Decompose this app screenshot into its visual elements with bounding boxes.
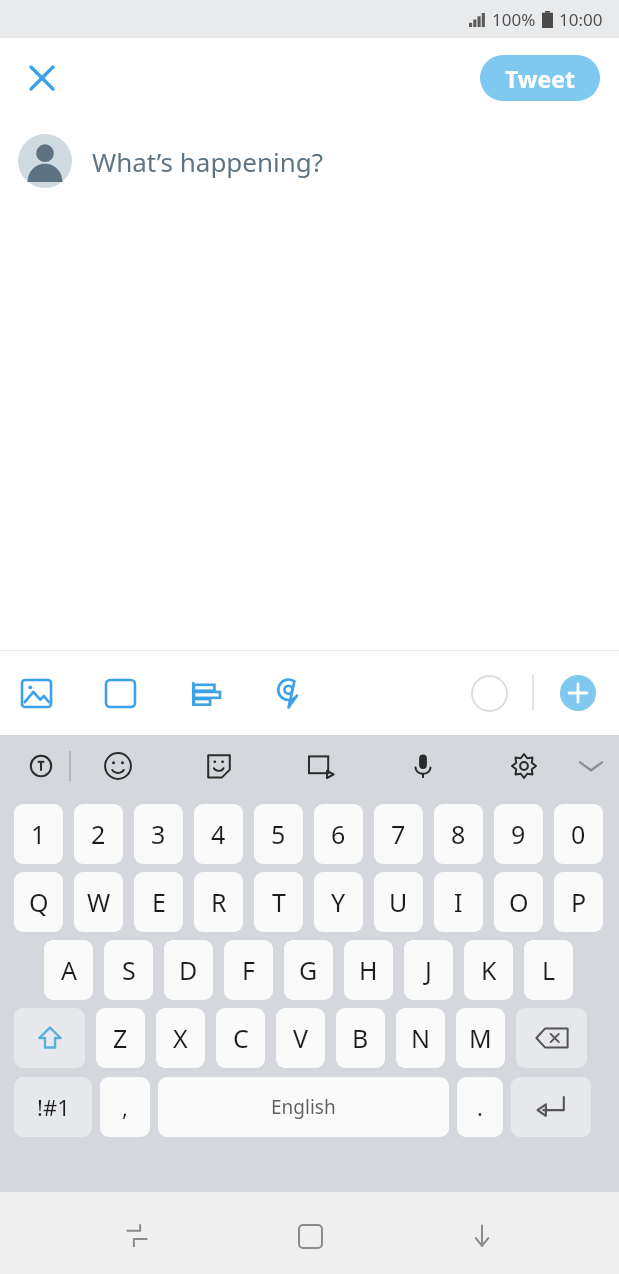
button[interactable]: M [456, 1008, 505, 1068]
staticText: U [389, 885, 408, 919]
button[interactable]: 2 [74, 804, 123, 864]
button[interactable]: Hide keyboard [447, 1201, 517, 1271]
button[interactable]: F [224, 940, 273, 1000]
staticText: 100% [492, 8, 536, 31]
staticText: N [411, 1021, 431, 1055]
button[interactable]: H [344, 940, 393, 1000]
staticText: G [299, 953, 318, 987]
staticText: D [179, 953, 198, 987]
button[interactable]: B [336, 1008, 385, 1068]
button[interactable]: Close [18, 54, 66, 102]
button[interactable]: K [464, 940, 513, 1000]
staticText: 8 [451, 817, 466, 851]
staticText: What’s happening? [92, 144, 324, 179]
button[interactable]: Q [14, 872, 63, 932]
button[interactable]: X [156, 1008, 205, 1068]
button[interactable]: 1 [14, 804, 63, 864]
button[interactable]: Keyboard settings [501, 743, 547, 789]
staticText: 7 [391, 817, 406, 851]
button[interactable]: Add location [264, 669, 312, 717]
staticText: V [293, 1021, 309, 1055]
button[interactable]: key [516, 1008, 587, 1068]
button[interactable]: Voice input [400, 743, 446, 789]
button[interactable]: 9 [494, 804, 543, 864]
staticText: 5 [271, 817, 286, 851]
button[interactable]: S [104, 940, 153, 1000]
button[interactable]: Z [96, 1008, 145, 1068]
button[interactable]: A [44, 940, 93, 1000]
staticText: , [122, 1092, 128, 1122]
staticText: A [61, 953, 77, 987]
button[interactable]: key [511, 1077, 591, 1137]
staticText: K [481, 953, 497, 987]
staticText: . [477, 1092, 483, 1122]
staticText: English [271, 1094, 336, 1120]
staticText: 0 [571, 817, 586, 851]
button[interactable]: T [254, 872, 303, 932]
button[interactable]: key [14, 1008, 85, 1068]
button[interactable]: Add photo [12, 669, 60, 717]
staticText: 2 [91, 817, 106, 851]
button[interactable]: GIF keyboard [298, 743, 344, 789]
staticText: C [233, 1021, 249, 1055]
button[interactable]: V [276, 1008, 325, 1068]
button[interactable]: Recents [102, 1201, 172, 1271]
staticText: S [122, 953, 136, 987]
staticText: 3 [151, 817, 166, 851]
button[interactable]: 8 [434, 804, 483, 864]
button[interactable]: 6 [314, 804, 363, 864]
staticText: P [571, 885, 587, 919]
button[interactable]: !#1 [14, 1077, 92, 1137]
button[interactable]: W [74, 872, 123, 932]
button[interactable]: 7 [374, 804, 423, 864]
staticText: 1 [31, 817, 46, 851]
staticText: O [509, 885, 529, 919]
staticText: T [272, 885, 286, 919]
staticText: L [542, 953, 556, 987]
button[interactable]: . [457, 1077, 503, 1137]
button[interactable]: Emoji [95, 743, 141, 789]
button[interactable]: C [216, 1008, 265, 1068]
button[interactable]: Add GIF [96, 669, 144, 717]
button[interactable]: English [158, 1077, 449, 1137]
staticText: R [211, 885, 227, 919]
staticText: J [425, 953, 432, 987]
staticText: 9 [511, 817, 526, 851]
button[interactable]: Add another tweet [556, 671, 600, 715]
button[interactable]: L [524, 940, 573, 1000]
button[interactable]: 0 [554, 804, 603, 864]
button[interactable]: I [434, 872, 483, 932]
button[interactable]: Hide toolbar [569, 744, 613, 788]
button[interactable]: J [404, 940, 453, 1000]
button[interactable]: 4 [194, 804, 243, 864]
button[interactable]: D [164, 940, 213, 1000]
staticText: Q [29, 885, 49, 919]
button[interactable]: Home [275, 1201, 345, 1271]
button[interactable]: G [284, 940, 333, 1000]
button[interactable]: Tweet [480, 55, 600, 101]
button[interactable]: U [374, 872, 423, 932]
button[interactable]: N [396, 1008, 445, 1068]
staticText: Y [331, 885, 346, 919]
staticText: 6 [331, 817, 346, 851]
staticText: Z [113, 1021, 128, 1055]
button[interactable]: Add poll [180, 669, 228, 717]
button[interactable]: Stickers [196, 743, 242, 789]
button[interactable]: E [134, 872, 183, 932]
staticText: W [87, 885, 111, 919]
button[interactable]: 3 [134, 804, 183, 864]
button[interactable]: Translate [18, 743, 64, 789]
button[interactable]: P [554, 872, 603, 932]
button[interactable]: 5 [254, 804, 303, 864]
staticText: B [352, 1021, 369, 1055]
button[interactable]: O [494, 872, 543, 932]
button[interactable]: , [100, 1077, 150, 1137]
staticText: E [152, 885, 166, 919]
staticText: 10:00 [559, 8, 603, 31]
button[interactable]: R [194, 872, 243, 932]
staticText: F [242, 953, 255, 987]
staticText: H [359, 953, 378, 987]
staticText: X [173, 1021, 188, 1055]
button[interactable]: Y [314, 872, 363, 932]
button[interactable]: Character count [465, 669, 513, 717]
